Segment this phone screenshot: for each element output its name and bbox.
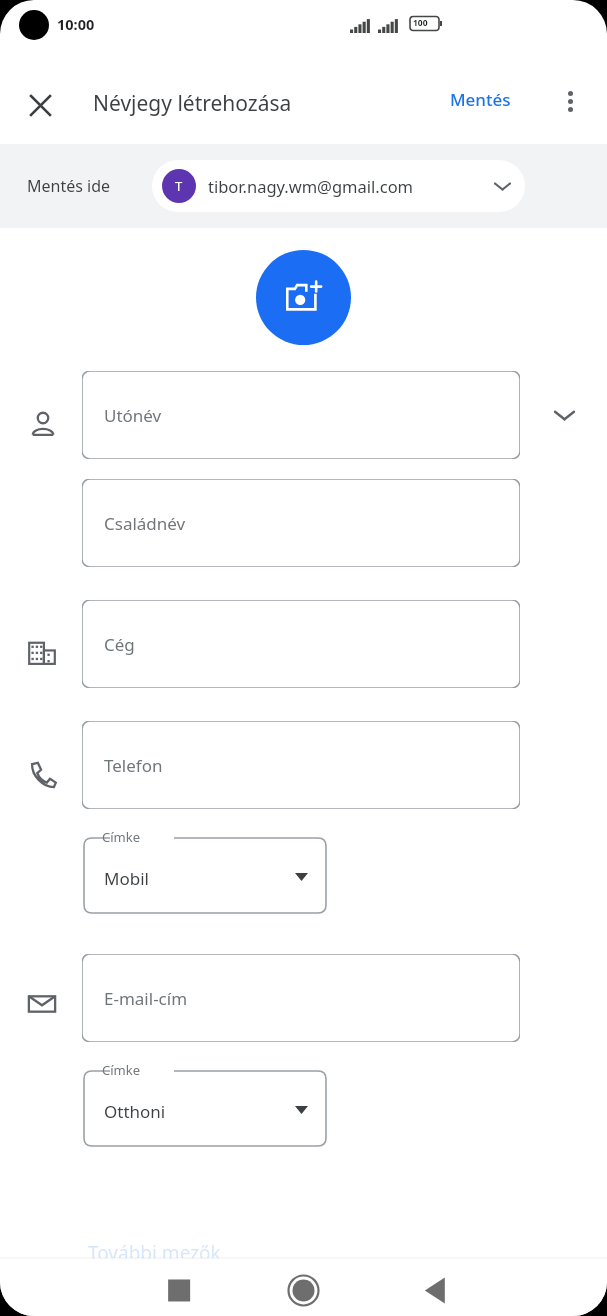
staticText: 10:00 <box>57 14 95 34</box>
button[interactable]: Címke <box>82 829 328 915</box>
staticText: Cég <box>104 633 135 656</box>
staticText: Címke <box>102 1061 140 1079</box>
button[interactable]: More options <box>546 77 594 125</box>
button[interactable]: Telefon <box>82 721 520 809</box>
button[interactable]: Phone <box>27 757 59 789</box>
button[interactable]: Mentés <box>442 79 519 120</box>
staticText: Névjegy létrehozása <box>93 89 292 118</box>
button[interactable]: Címke <box>82 1062 328 1148</box>
button[interactable]: Name <box>28 409 58 439</box>
button[interactable]: Add photo <box>256 250 351 345</box>
staticText: Mentés ide <box>27 175 111 197</box>
button[interactable]: Company <box>26 637 58 669</box>
button[interactable]: Cég <box>82 600 520 688</box>
button[interactable]: T <box>152 160 525 212</box>
staticText: Mobil <box>104 867 149 890</box>
staticText: Telefon <box>104 754 163 777</box>
staticText: T <box>175 177 183 195</box>
staticText: További mezők <box>88 1240 221 1266</box>
staticText: E-mail-cím <box>104 987 188 1010</box>
button[interactable]: Családnév <box>82 479 520 567</box>
staticText: Utónév <box>104 404 162 427</box>
staticText: Családnév <box>104 512 186 535</box>
staticText: Címke <box>102 828 140 846</box>
button[interactable]: Utónév <box>82 371 520 459</box>
button[interactable]: E-mail-cím <box>82 954 520 1042</box>
button[interactable]: Email <box>26 988 58 1020</box>
staticText: 100 <box>413 17 428 29</box>
staticText: tibor.nagy.wm@gmail.com <box>208 175 414 197</box>
staticText: Otthoni <box>104 1100 166 1123</box>
staticText: Mentés <box>450 88 511 111</box>
button[interactable]: Expand name fields <box>546 397 582 433</box>
button[interactable]: Close <box>12 77 68 133</box>
